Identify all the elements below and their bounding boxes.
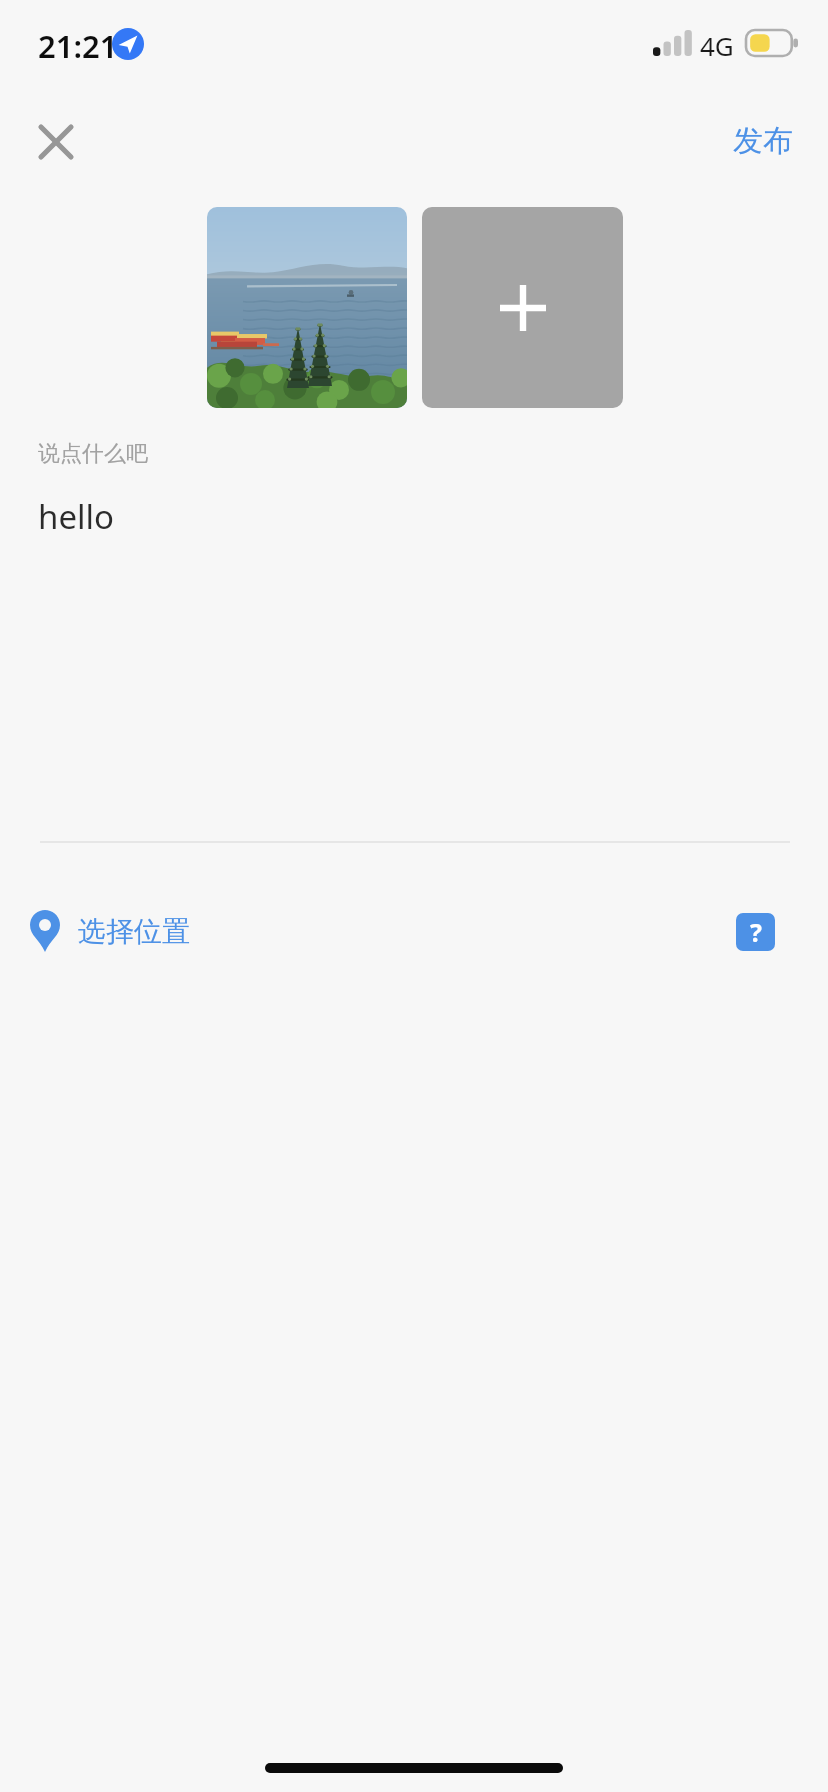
button[interactable]: 发布 <box>715 105 810 177</box>
button[interactable]: 说点什么吧 <box>38 440 790 830</box>
button[interactable]: Selected photo <box>207 207 407 408</box>
staticText: ? <box>750 915 762 949</box>
staticText: hello <box>38 494 114 539</box>
button[interactable]: Close <box>22 108 90 176</box>
staticText: 选择位置 <box>78 914 190 949</box>
button[interactable]: Help <box>736 913 775 951</box>
staticText: 4G <box>700 28 734 63</box>
button[interactable]: 选择位置 <box>30 895 260 967</box>
staticText: 21:21 <box>38 25 118 65</box>
staticText: 说点什么吧 <box>38 440 148 468</box>
button[interactable]: Add photo <box>422 207 623 408</box>
staticText: 发布 <box>733 122 793 160</box>
